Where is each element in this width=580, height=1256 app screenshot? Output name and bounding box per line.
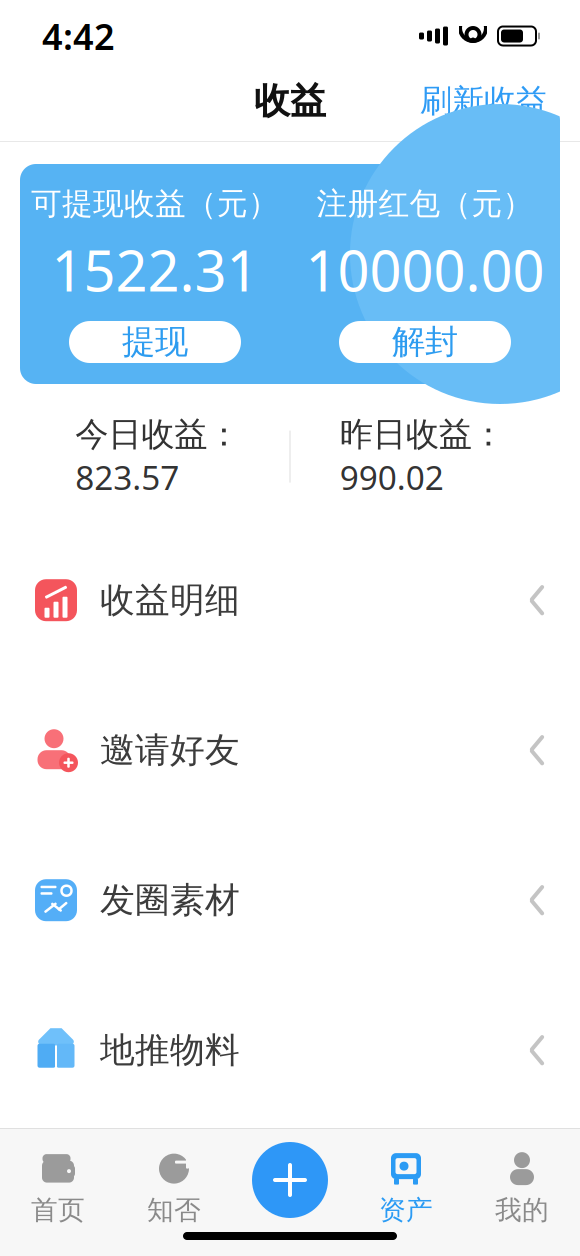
staticText: 提现 [122, 321, 188, 362]
staticText: 可提现收益（元） [31, 185, 279, 223]
staticText: 资产 [379, 1194, 433, 1226]
staticText: 地推物料 [100, 1029, 240, 1071]
button[interactable]: 首页 [0, 1146, 116, 1230]
staticText: 发圈素材 [100, 879, 240, 921]
staticText: 收益明细 [100, 579, 240, 621]
button[interactable]: 发圈素材 [0, 825, 580, 975]
staticText: 10000.00 [305, 233, 544, 307]
staticText: 知否 [147, 1194, 201, 1226]
staticText: 我的 [495, 1194, 549, 1226]
button[interactable]: 收益明细 [0, 525, 580, 675]
staticText: 1522.31 [51, 233, 258, 307]
staticText: 收益 [254, 79, 326, 123]
staticText: 昨日收益：990.02 [340, 414, 505, 499]
button[interactable]: 邀请好友 [0, 675, 580, 825]
staticText: 今日收益：823.57 [75, 414, 240, 499]
button[interactable]: 刷新收益 [410, 73, 558, 129]
button[interactable]: 知否 [116, 1146, 232, 1230]
button[interactable]: 地推物料 [0, 975, 580, 1125]
staticText: 刷新收益 [420, 81, 548, 121]
staticText: 邀请好友 [100, 729, 240, 771]
button[interactable]: Add [232, 1142, 348, 1234]
button[interactable]: 我的 [464, 1146, 580, 1230]
staticText: 注册红包（元） [316, 185, 533, 223]
staticText: 4:42 [42, 12, 115, 60]
button[interactable]: 提现 [69, 321, 241, 363]
staticText: 首页 [31, 1194, 85, 1226]
button[interactable]: 资产 [348, 1146, 464, 1230]
button[interactable]: 解封 [339, 321, 511, 363]
staticText: 解封 [392, 321, 458, 362]
